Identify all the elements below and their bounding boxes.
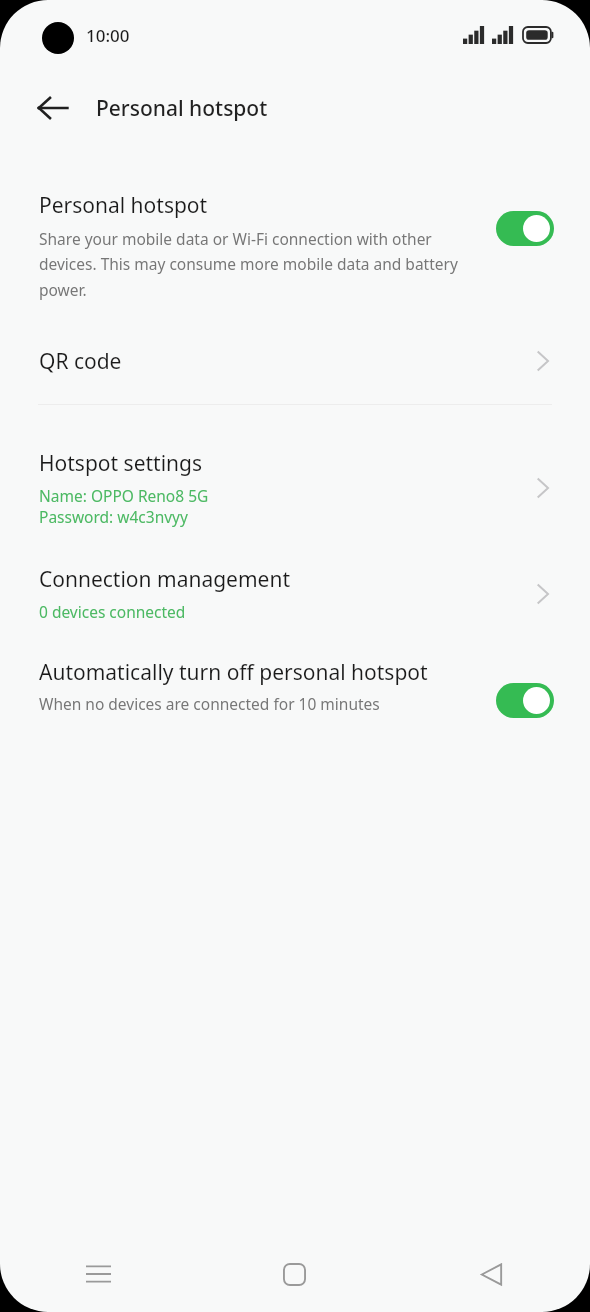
button[interactable]: Hotspot settings	[0, 449, 590, 527]
other: Open	[530, 579, 556, 609]
button[interactable]: Home	[196, 1236, 393, 1312]
button[interactable]: Back	[393, 1236, 590, 1312]
button[interactable]: Toggle	[496, 683, 554, 718]
button[interactable]: Automatically turn off personal hotspot	[0, 658, 590, 714]
staticText: When no devices are connected for 10 min…	[39, 693, 380, 714]
staticText: 0 devices connected	[39, 601, 186, 622]
other: Open	[530, 346, 556, 376]
staticText: Password: w4c3nvyy	[39, 506, 188, 527]
staticText: Personal hotspot	[96, 94, 268, 123]
button[interactable]: Toggle	[496, 211, 554, 246]
button[interactable]: Personal hotspot	[0, 191, 590, 301]
button[interactable]: Connection management	[0, 565, 590, 622]
staticText: Hotspot settings	[39, 449, 203, 478]
staticText: QR code	[39, 347, 530, 376]
staticText: Personal hotspot	[39, 191, 208, 220]
staticText: 10:00	[86, 24, 130, 47]
button[interactable]: Recent apps	[0, 1236, 196, 1312]
staticText: Automatically turn off personal hotspot	[39, 658, 428, 687]
staticText: Connection management	[39, 565, 290, 594]
staticText: Share your mobile data or Wi-Fi connecti…	[39, 228, 480, 301]
other: Open	[530, 473, 556, 503]
button[interactable]: Back	[24, 79, 82, 137]
staticText: Name: OPPO Reno8 5G	[39, 485, 209, 506]
button[interactable]: QR code	[0, 339, 590, 383]
